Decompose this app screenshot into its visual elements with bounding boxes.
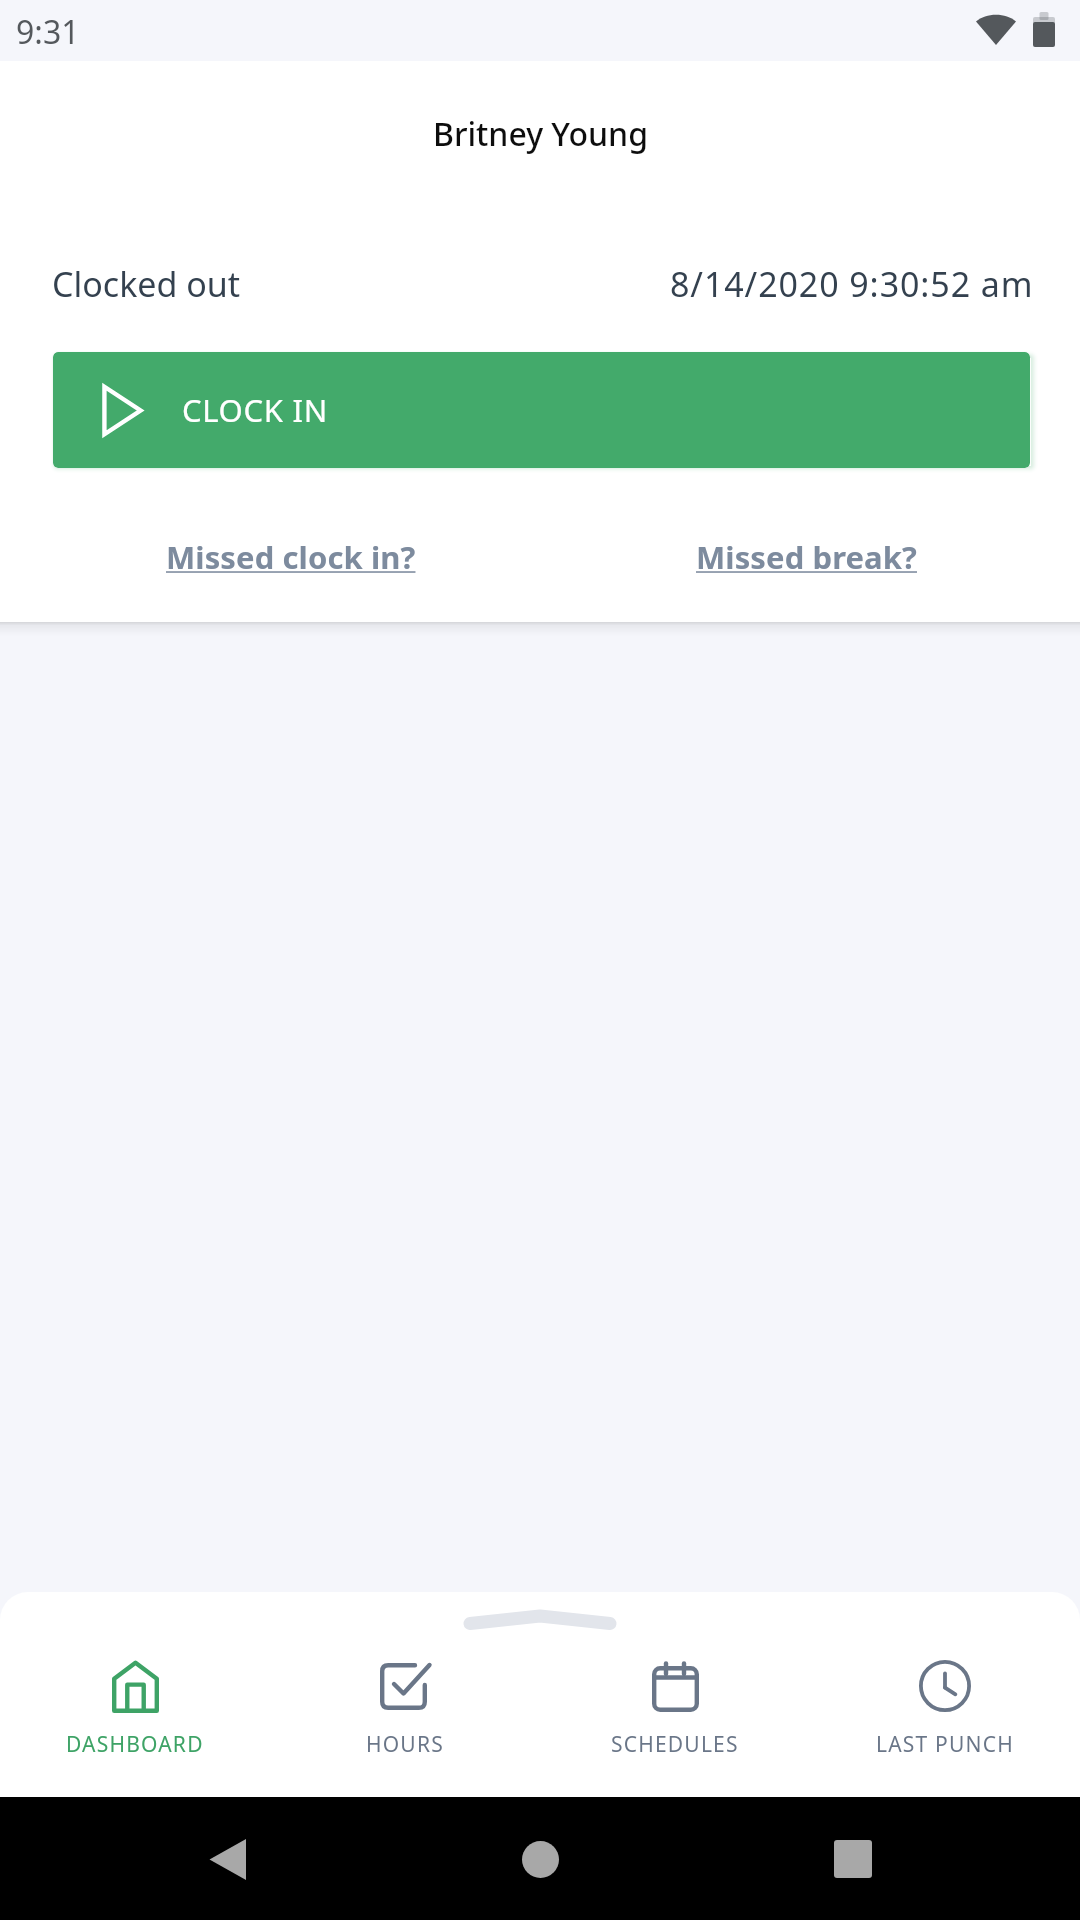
button[interactable]: HOURS — [270, 1659, 540, 1769]
staticText: Clocked out — [52, 261, 241, 301]
button[interactable]: LAST PUNCH — [810, 1659, 1080, 1769]
staticText: 9:31 — [16, 10, 80, 54]
staticText: LAST PUNCH — [876, 1730, 1014, 1759]
staticText: Britney Young — [433, 112, 648, 156]
button[interactable]: SCHEDULES — [540, 1659, 810, 1769]
staticText: SCHEDULES — [611, 1730, 739, 1759]
button[interactable]: CLOCK IN — [53, 352, 1030, 468]
button[interactable]: Recent apps — [808, 1814, 898, 1904]
staticText: CLOCK IN — [182, 389, 328, 431]
staticText: Missed break? — [696, 536, 917, 576]
button[interactable]: DASHBOARD — [0, 1659, 270, 1769]
staticText: 8/14/2020 9:30:52 am — [670, 261, 1034, 301]
staticText: Missed clock in? — [166, 536, 416, 576]
button[interactable]: Back — [182, 1814, 272, 1904]
button[interactable]: Home — [495, 1814, 585, 1904]
button[interactable]: Missed break? — [540, 536, 1080, 576]
staticText: DASHBOARD — [66, 1730, 204, 1759]
staticText: HOURS — [366, 1730, 444, 1759]
button[interactable]: Missed clock in? — [0, 536, 540, 576]
